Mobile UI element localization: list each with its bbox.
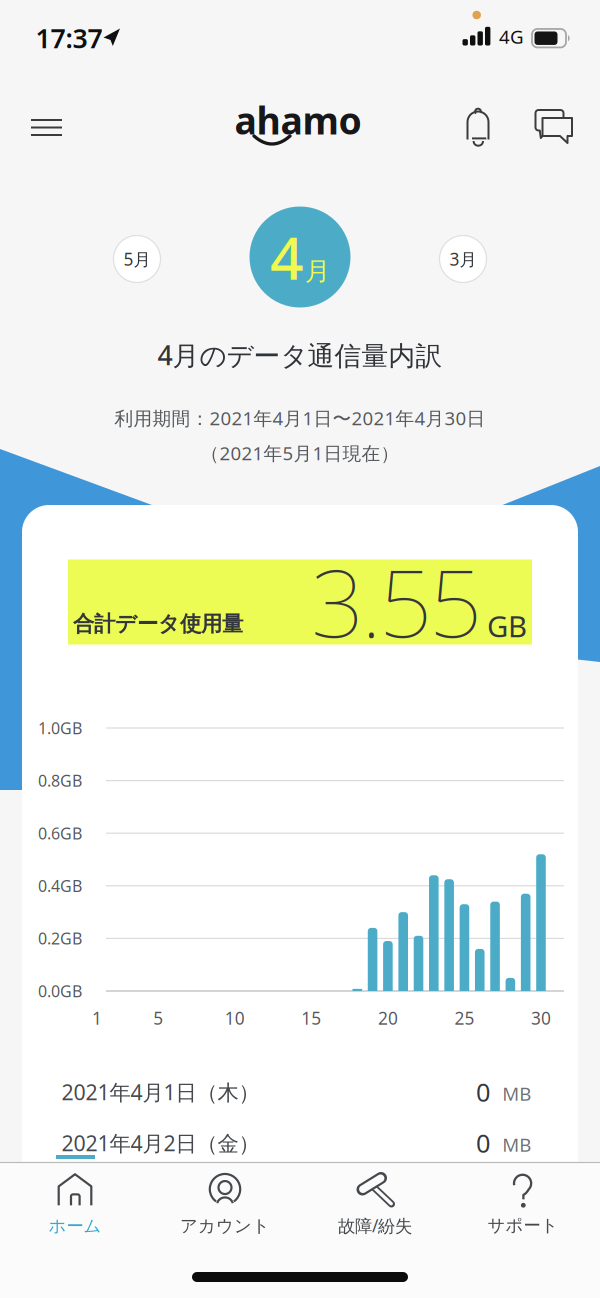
button[interactable]: Notifications [459,101,497,153]
button[interactable]: Damage or loss [305,1164,445,1244]
button[interactable]: Chat [528,102,578,149]
staticText: 0.2GB [38,928,82,949]
staticText: 1 [92,1006,102,1029]
staticText: （2021年5月1日現在） [200,441,399,465]
button[interactable]: Support [458,1164,588,1244]
button[interactable]: Menu [21,109,72,146]
staticText: 4 [270,218,304,296]
staticText: 17:37 [35,20,102,56]
staticText: 3.55 [311,539,482,663]
button[interactable]: 5月 [113,235,160,282]
staticText: 2021年4月1日（木） [61,1078,259,1106]
staticText: サポート [487,1215,558,1236]
staticText: MB [502,1081,531,1106]
staticText: ホーム [48,1215,101,1237]
staticText: 15 [301,1006,321,1029]
staticText: 20 [378,1006,398,1029]
staticText: 合計データ使用量 [73,611,243,637]
staticText: 利用期間：2021年4月1日〜2021年4月30日 [114,406,485,430]
staticText: 2021年4月2日（金） [61,1129,259,1157]
staticText: MB [502,1132,531,1157]
button[interactable]: 4 [249,206,350,307]
staticText: 0.0GB [38,980,82,1002]
staticText: 4月のデータ通信量内訳 [157,337,442,373]
staticText: 25 [454,1006,474,1029]
button[interactable]: 3月 [439,235,486,282]
staticText: 0.4GB [38,875,82,896]
staticText: 5 [153,1006,163,1029]
staticText: ahamo [234,95,361,145]
staticText: 0.8GB [38,770,82,791]
staticText: 故障/紛失 [338,1214,412,1237]
staticText: 1.0GB [38,717,82,739]
staticText: 0 [476,1075,490,1109]
button[interactable]: Account [155,1165,295,1245]
staticText: 0 [476,1126,490,1160]
staticText: 3月 [449,247,476,270]
staticText: 30 [531,1006,551,1029]
staticText: 月 [305,256,330,287]
staticText: 4G [499,24,524,49]
staticText: 10 [225,1006,245,1029]
staticText: GB [487,606,527,645]
staticText: 0.6GB [38,823,82,844]
button[interactable]: Home [10,1165,140,1245]
button[interactable]: ahamo home [232,98,364,146]
staticText: アカウント [180,1215,270,1237]
staticText: 5月 [123,247,150,270]
